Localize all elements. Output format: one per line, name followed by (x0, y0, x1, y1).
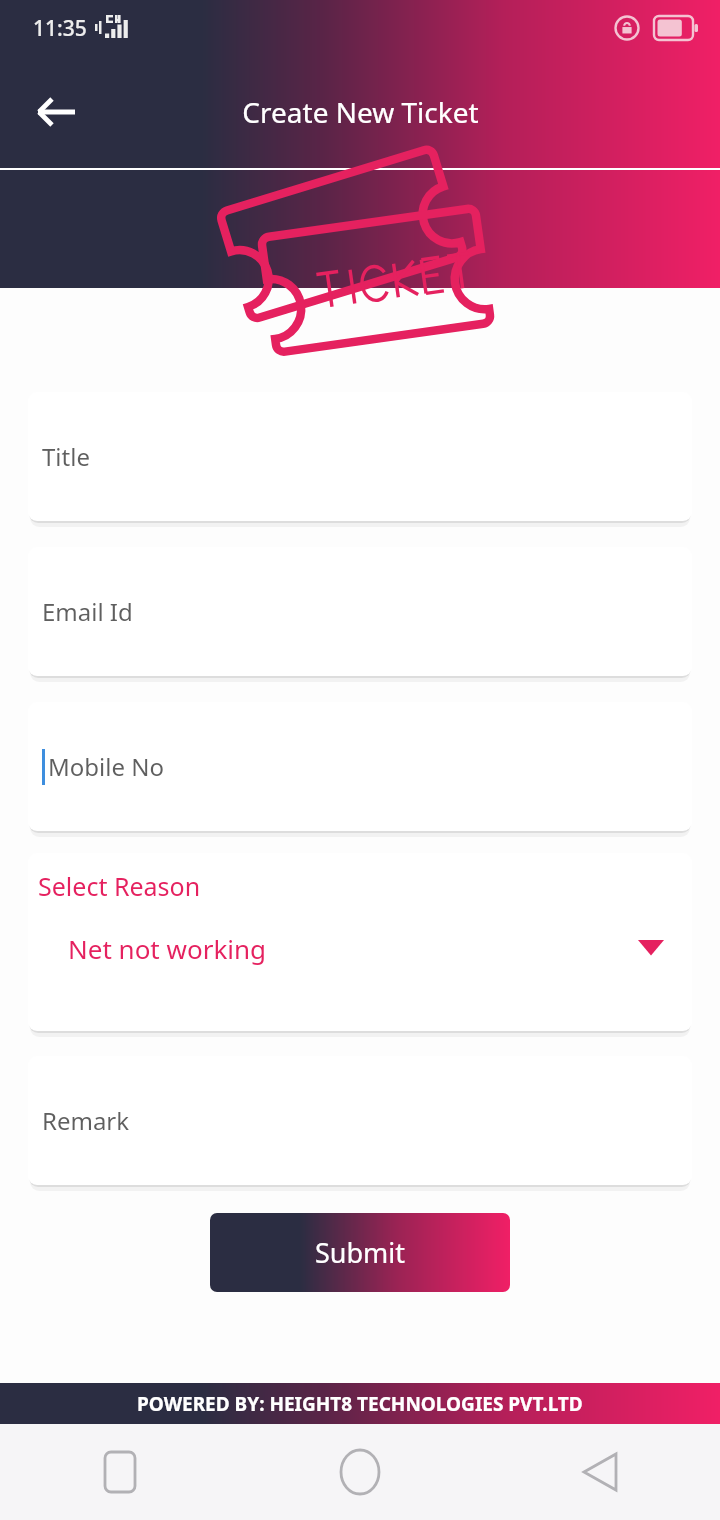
button[interactable]: Back (20, 76, 92, 148)
button[interactable]: Remark (28, 1056, 692, 1185)
button[interactable]: Select Reason (28, 853, 692, 1031)
staticText: Remark (42, 1104, 130, 1137)
staticText: Net not working (68, 931, 267, 966)
staticText: Title (42, 440, 90, 473)
button[interactable]: Mobile No (28, 702, 692, 831)
staticText: 11:35 (33, 14, 87, 43)
staticText: Select Reason (38, 869, 201, 903)
staticText: Email Id (42, 595, 133, 628)
button[interactable]: Home (240, 1424, 480, 1520)
staticText: POWERED BY: HEIGHT8 TECHNOLOGIES PVT.LTD (137, 1391, 583, 1417)
button[interactable]: Title (28, 392, 692, 521)
button[interactable]: Recents (0, 1424, 240, 1520)
staticText: Submit (315, 1234, 406, 1271)
staticText: Create New Ticket (242, 93, 479, 131)
staticText: Mobile No (48, 750, 164, 783)
button[interactable]: Email Id (28, 547, 692, 676)
button[interactable]: Back (480, 1424, 720, 1520)
button[interactable]: Submit (210, 1213, 510, 1292)
